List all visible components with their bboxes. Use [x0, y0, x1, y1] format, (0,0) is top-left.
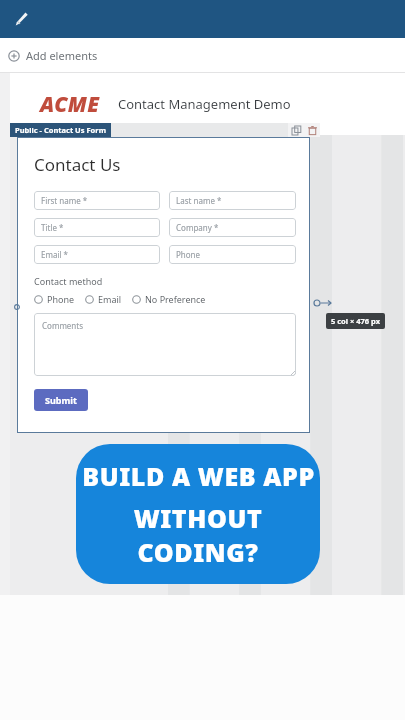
staticText: First name *: [41, 195, 88, 206]
staticText: Public - Contact Us Form: [15, 125, 106, 135]
staticText: ACME: [40, 90, 100, 119]
staticText: Add elements: [26, 48, 98, 63]
button[interactable]: Delete: [304, 123, 320, 137]
staticText: Company *: [176, 222, 219, 233]
staticText: BUILD A WEB APP: [82, 459, 315, 493]
staticText: Email: [98, 293, 122, 305]
button[interactable]: Edit: [6, 4, 36, 34]
staticText: Last name *: [176, 195, 222, 206]
button[interactable]: Phone: [169, 245, 296, 264]
staticText: Phone: [176, 249, 201, 260]
staticText: Title *: [41, 222, 64, 233]
button[interactable]: Contact Us: [17, 137, 310, 433]
button[interactable]: Phone: [34, 293, 75, 305]
button[interactable]: Title *: [34, 218, 160, 237]
button[interactable]: Company *: [169, 218, 296, 237]
button[interactable]: Comments: [34, 313, 296, 376]
staticText: Contact method: [34, 275, 103, 287]
button[interactable]: No Preference: [132, 293, 206, 305]
staticText: No Preference: [145, 293, 206, 305]
staticText: 5 col × 476 px: [331, 316, 380, 326]
button[interactable]: First name *: [34, 191, 160, 210]
button[interactable]: Submit: [34, 389, 88, 411]
staticText: Submit: [45, 394, 77, 406]
staticText: Comments: [42, 320, 84, 331]
button[interactable]: Email *: [34, 245, 160, 264]
button[interactable]: Email: [85, 293, 122, 305]
button[interactable]: Add elements: [8, 48, 98, 63]
button[interactable]: Public - Contact Us Form: [10, 123, 111, 137]
button[interactable]: Last name *: [169, 191, 296, 210]
staticText: Contact Us: [34, 153, 121, 176]
staticText: Contact Management Demo: [118, 95, 291, 113]
button[interactable]: Duplicate: [288, 123, 304, 137]
staticText: Phone: [47, 293, 75, 305]
staticText: WITHOUT CODING?: [76, 501, 320, 569]
staticText: Email *: [41, 249, 69, 260]
